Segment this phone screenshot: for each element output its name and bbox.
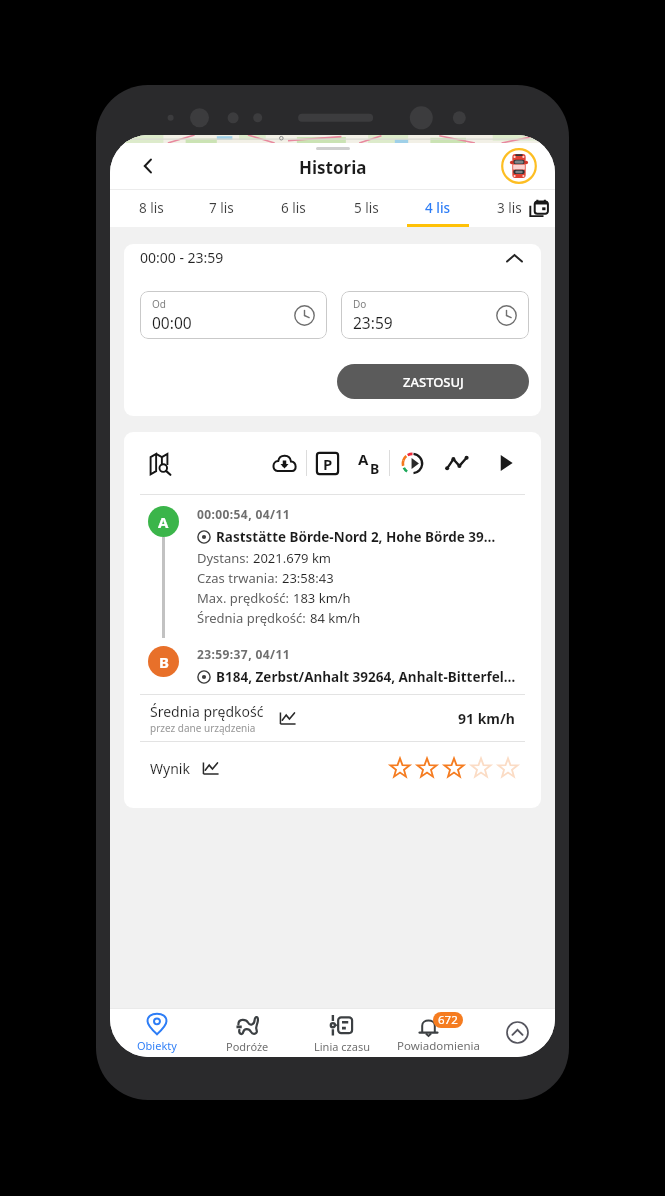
button[interactable]: Star 2 bbox=[414, 755, 440, 781]
button[interactable]: Obiekty bbox=[112, 1008, 202, 1057]
staticText: B bbox=[370, 459, 380, 478]
staticText: 23:59 bbox=[353, 312, 393, 333]
staticText: 7 lis bbox=[209, 199, 234, 217]
button[interactable]: Play bbox=[489, 446, 523, 480]
staticText: P bbox=[323, 454, 333, 474]
staticText: A bbox=[358, 449, 369, 469]
button[interactable]: Calendar bbox=[522, 189, 555, 227]
button[interactable]: Vehicle bbox=[497, 144, 541, 188]
button[interactable]: 5 lis bbox=[333, 189, 399, 227]
staticText: 91 km/h bbox=[458, 709, 515, 728]
staticText: Podróże bbox=[226, 1039, 269, 1054]
button[interactable]: Back bbox=[126, 144, 170, 188]
button[interactable]: 6 lis bbox=[260, 189, 326, 227]
staticText: 6 lis bbox=[281, 199, 306, 217]
button[interactable]: Expand bbox=[493, 1008, 541, 1057]
staticText: 672 bbox=[438, 1012, 458, 1028]
staticText: Historia bbox=[299, 156, 367, 179]
button[interactable]: 4 lis bbox=[405, 189, 471, 227]
staticText: 8 lis bbox=[139, 199, 164, 217]
button[interactable]: Linia czasu bbox=[295, 1008, 389, 1057]
button[interactable]: 8 lis bbox=[118, 189, 184, 227]
button[interactable]: Map search bbox=[142, 445, 178, 481]
button[interactable]: Star 4 bbox=[468, 755, 494, 781]
staticText: B184, Zerbst/Anhalt 39264, Anhalt-Bitter… bbox=[216, 668, 516, 686]
staticText: 23:59:37, 04/11 bbox=[197, 646, 290, 662]
button[interactable]: Collapse bbox=[499, 244, 529, 273]
button[interactable]: A to B bbox=[352, 446, 386, 480]
staticText: Obiekty bbox=[137, 1038, 177, 1053]
staticText: 5 lis bbox=[354, 199, 379, 217]
staticText: Od bbox=[152, 297, 166, 311]
staticText: 2021.679 km bbox=[253, 549, 332, 567]
button[interactable]: Parking bbox=[310, 446, 344, 480]
staticText: A bbox=[158, 512, 169, 532]
staticText: ZASTOSUJ bbox=[403, 373, 464, 391]
staticText: 4 lis bbox=[425, 199, 451, 217]
staticText: Raststätte Börde-Nord 2, Hohe Börde 39… bbox=[216, 528, 496, 546]
staticText: 3 lis bbox=[497, 199, 522, 217]
staticText: B bbox=[159, 652, 169, 672]
button[interactable]: 3 lis bbox=[476, 189, 542, 227]
button[interactable]: 672 bbox=[388, 1008, 488, 1057]
staticText: Max. prędkość: bbox=[197, 589, 293, 607]
button[interactable]: Od bbox=[140, 291, 327, 339]
button[interactable]: ZASTOSUJ bbox=[337, 364, 529, 399]
staticText: przez dane urządzenia bbox=[150, 721, 256, 735]
button[interactable]: Star 1 bbox=[387, 755, 413, 781]
staticText: Do bbox=[353, 297, 367, 311]
button[interactable]: Star 3 bbox=[441, 755, 467, 781]
staticText: 00:00:54, 04/11 bbox=[197, 506, 290, 522]
staticText: Średnia prędkość: bbox=[197, 609, 310, 627]
button[interactable]: 7 lis bbox=[188, 189, 254, 227]
staticText: Powiadomienia bbox=[397, 1038, 480, 1054]
staticText: 84 km/h bbox=[310, 609, 361, 627]
button[interactable]: Star 5 bbox=[495, 755, 521, 781]
button[interactable]: Do bbox=[341, 291, 529, 339]
button[interactable]: Download bbox=[266, 445, 302, 481]
staticText: Średnia prędkość bbox=[150, 702, 264, 721]
button[interactable]: Chart bbox=[440, 446, 474, 480]
staticText: 183 km/h bbox=[293, 589, 351, 607]
staticText: 23:58:43 bbox=[282, 569, 334, 587]
staticText: 00:00 - 23:59 bbox=[140, 248, 224, 267]
button[interactable]: Speed chart bbox=[275, 705, 301, 731]
staticText: Dystans: bbox=[197, 549, 253, 567]
button[interactable]: Score chart bbox=[198, 755, 224, 781]
button[interactable]: Podróże bbox=[200, 1008, 294, 1057]
button[interactable]: Play trip bbox=[395, 446, 429, 480]
staticText: Linia czasu bbox=[314, 1039, 370, 1054]
staticText: 00:00 bbox=[152, 312, 192, 333]
staticText: Wynik bbox=[150, 759, 190, 778]
staticText: Czas trwania: bbox=[197, 569, 282, 587]
